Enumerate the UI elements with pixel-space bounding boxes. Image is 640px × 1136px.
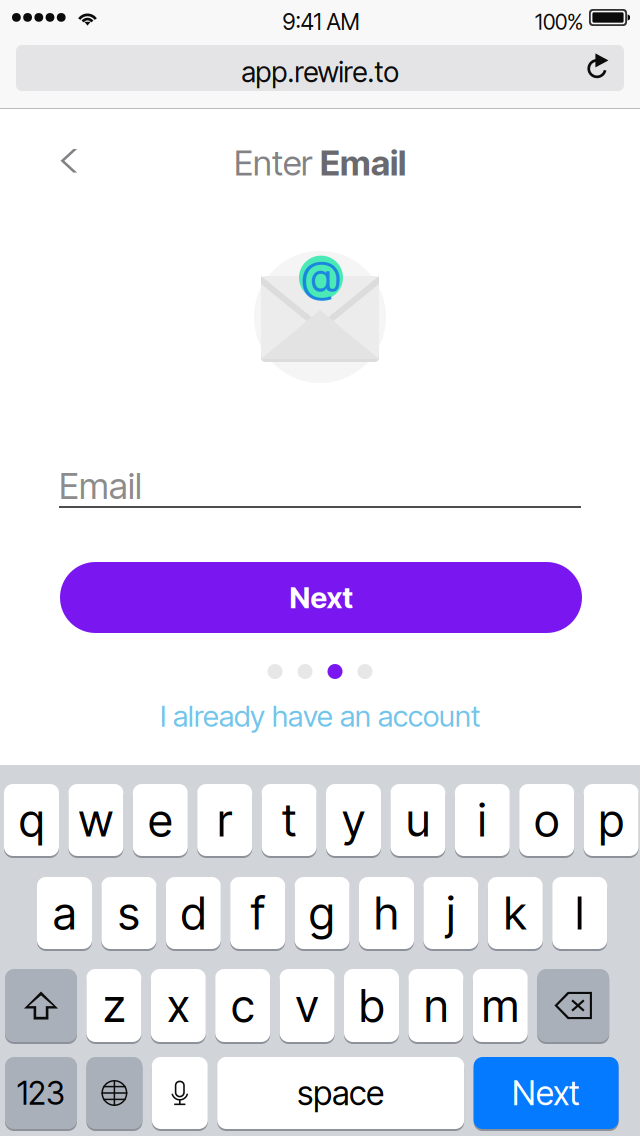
staticText: n: [424, 978, 448, 1033]
button[interactable]: Delete: [537, 968, 609, 1043]
button[interactable]: I already have an account: [0, 694, 640, 738]
button[interactable]: k: [488, 876, 543, 950]
button[interactable]: Dictation: [152, 1056, 208, 1130]
button[interactable]: t: [262, 783, 317, 857]
button[interactable]: f: [230, 876, 285, 950]
button[interactable]: b: [344, 968, 399, 1043]
button[interactable]: r: [197, 783, 252, 857]
button[interactable]: i: [455, 783, 510, 857]
staticText: v: [296, 978, 319, 1033]
staticText: b: [359, 978, 384, 1033]
staticText: Next: [289, 580, 352, 615]
staticText: m: [482, 978, 519, 1033]
button[interactable]: y: [326, 783, 381, 857]
staticText: d: [181, 886, 206, 940]
button[interactable]: s: [101, 876, 156, 950]
button[interactable]: a: [37, 876, 92, 950]
button[interactable]: p: [584, 783, 639, 857]
button[interactable]: Next: [474, 1056, 619, 1130]
staticText: a: [53, 886, 76, 940]
staticText: I already have an account: [160, 698, 480, 734]
staticText: Email: [320, 142, 406, 184]
staticText: y: [342, 793, 365, 847]
staticText: r: [217, 793, 232, 847]
staticText: space: [297, 1073, 384, 1113]
staticText: i: [478, 793, 487, 847]
staticText: Enter: [234, 142, 320, 184]
staticText: o: [534, 793, 559, 847]
staticText: g: [309, 886, 335, 940]
staticText: l: [575, 886, 584, 940]
button[interactable]: m: [473, 968, 528, 1043]
button[interactable]: 123: [5, 1056, 77, 1130]
button[interactable]: Reload: [576, 44, 624, 92]
staticText: s: [118, 886, 140, 940]
button[interactable]: n: [408, 968, 463, 1043]
staticText: x: [167, 978, 189, 1033]
staticText: f: [251, 886, 265, 940]
staticText: app.rewire.to: [241, 55, 398, 89]
button[interactable]: j: [423, 876, 478, 950]
button[interactable]: g: [295, 876, 350, 950]
button[interactable]: v: [280, 968, 335, 1043]
button[interactable]: q: [4, 783, 59, 857]
staticText: 100%: [535, 9, 583, 35]
staticText: h: [374, 886, 399, 940]
button[interactable]: h: [359, 876, 414, 950]
button[interactable]: o: [519, 783, 574, 857]
button[interactable]: z: [86, 968, 141, 1043]
staticText: 9:41 AM: [282, 8, 359, 35]
staticText: p: [599, 793, 624, 847]
staticText: q: [19, 793, 44, 847]
button[interactable]: Next keyboard: [86, 1056, 142, 1130]
button[interactable]: space: [217, 1056, 464, 1130]
button[interactable]: Shift: [5, 968, 77, 1043]
button[interactable]: d: [166, 876, 221, 950]
staticText: u: [406, 793, 430, 847]
staticText: k: [504, 886, 527, 940]
button[interactable]: Next: [60, 562, 582, 633]
staticText: z: [103, 978, 125, 1033]
staticText: w: [78, 793, 113, 847]
button[interactable]: w: [68, 783, 123, 857]
staticText: Next: [512, 1073, 580, 1113]
button[interactable]: l: [552, 876, 607, 950]
staticText: t: [282, 793, 296, 847]
staticText: Email: [59, 464, 142, 508]
button[interactable]: e: [133, 783, 188, 857]
staticText: c: [231, 978, 254, 1033]
staticText: e: [148, 793, 172, 847]
staticText: @: [301, 250, 340, 303]
staticText: j: [446, 886, 455, 940]
button[interactable]: u: [390, 783, 445, 857]
button[interactable]: c: [215, 968, 270, 1043]
staticText: 123: [17, 1074, 65, 1112]
button[interactable]: x: [151, 968, 206, 1043]
button[interactable]: Back: [39, 131, 99, 191]
